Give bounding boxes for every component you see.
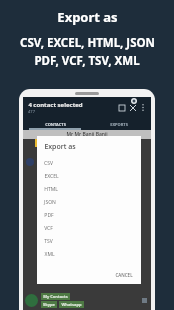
button[interactable]: HTML [37, 183, 141, 196]
button[interactable]: TSV [37, 235, 141, 248]
staticText: EXPORTS [110, 122, 128, 127]
staticText: 477 [28, 109, 35, 114]
staticText: TSV [44, 238, 53, 245]
staticText: PDF [44, 212, 54, 219]
button[interactable]: Close [127, 102, 138, 113]
button[interactable]: CANCEL [113, 270, 135, 280]
staticText: Skype [43, 302, 55, 307]
staticText: 4 contact selected [28, 101, 83, 109]
staticText: EXCEL [44, 173, 59, 180]
button[interactable]: JSON [37, 196, 141, 209]
staticText: VCF [44, 225, 53, 232]
staticText: HTML [44, 186, 58, 193]
staticText: CONTACTS [45, 122, 66, 127]
staticText: XML [44, 251, 55, 258]
staticText: CANCEL [115, 272, 133, 278]
staticText: Export as [57, 8, 118, 26]
staticText: Whatsapp [61, 302, 82, 307]
staticText: CSV, EXCEL, HTML, JSON [20, 35, 155, 51]
button[interactable]: CONTACTS [23, 118, 87, 130]
staticText: My Contacts [43, 294, 68, 299]
button[interactable]: EXCEL [37, 170, 141, 183]
staticText: Mr Mr Banji Banji [66, 131, 108, 138]
button[interactable]: PDF [37, 209, 141, 222]
staticText: CSV [44, 160, 53, 167]
button[interactable]: VCF [37, 222, 141, 235]
staticText: JSON [44, 199, 56, 206]
button[interactable]: CSV [37, 157, 141, 170]
button[interactable]: EXPORTS [87, 118, 151, 130]
staticText: PDF, VCF, TSV, XML [34, 53, 140, 69]
staticText: Export as [44, 142, 76, 152]
button[interactable]: XML [37, 248, 141, 261]
button[interactable]: More options [138, 103, 147, 112]
button[interactable]: Edit [116, 102, 127, 113]
